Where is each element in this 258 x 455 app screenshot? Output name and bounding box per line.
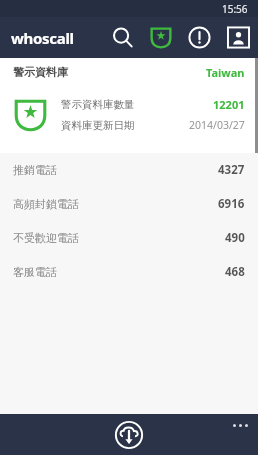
button[interactable]: 推銷電話 — [0, 153, 258, 187]
button[interactable]: whoscall — [0, 28, 80, 48]
staticText: 警示資料庫 — [13, 65, 68, 79]
staticText: 警示資料庫數量 — [61, 98, 135, 111]
button[interactable]: More options — [222, 414, 258, 436]
staticText: 6916 — [218, 196, 245, 212]
staticText: 推銷電話 — [13, 163, 57, 177]
staticText: 468 — [225, 264, 245, 280]
staticText: 資料庫更新日期 — [61, 119, 135, 132]
staticText: 12201 — [213, 97, 245, 112]
staticText: 不受歡迎電話 — [13, 231, 79, 245]
staticText: Taiwan — [206, 65, 245, 80]
staticText: 15:56 — [222, 2, 248, 16]
staticText: whoscall — [11, 28, 74, 48]
staticText: 2014/03/27 — [189, 118, 245, 132]
button[interactable]: 高頻封鎖電話 — [0, 187, 258, 221]
button[interactable]: Alert database — [142, 17, 180, 58]
staticText: 客服電話 — [13, 265, 57, 279]
staticText: 490 — [225, 230, 245, 246]
staticText: 高頻封鎖電話 — [13, 197, 79, 211]
staticText: 4327 — [218, 162, 245, 178]
button[interactable]: 不受歡迎電話 — [0, 221, 258, 255]
button[interactable]: 客服電話 — [0, 255, 258, 289]
button[interactable]: Contacts — [218, 17, 258, 58]
button[interactable]: Update database — [112, 418, 146, 452]
button[interactable]: Search — [104, 17, 142, 58]
button[interactable]: Report — [180, 17, 218, 58]
